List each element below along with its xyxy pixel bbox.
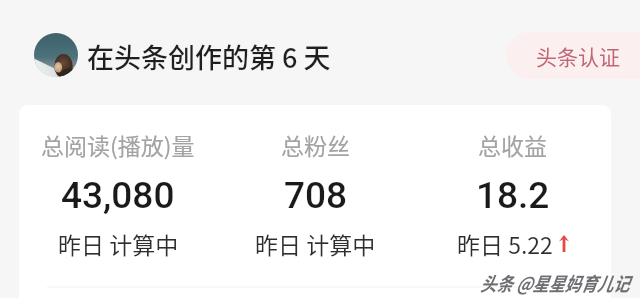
button[interactable]: Profile avatar	[34, 33, 78, 77]
staticText: 昨日 5.22	[457, 227, 553, 260]
staticText: 708	[284, 174, 348, 217]
button[interactable]: 总阅读(播放)量	[19, 105, 217, 260]
staticText: 总阅读(播放)量	[41, 128, 195, 161]
staticText: 总粉丝	[281, 128, 350, 161]
staticText: 头条 @星星妈育儿记	[480, 269, 630, 297]
staticText: 43,080	[61, 174, 175, 217]
button[interactable]: 总收益	[414, 105, 611, 260]
staticText: 昨日 计算中	[58, 227, 179, 260]
staticText: 昨日 计算中	[255, 227, 376, 260]
staticText: 18.2	[476, 174, 550, 217]
button[interactable]: 总粉丝	[217, 105, 414, 260]
button[interactable]: 头条认证	[506, 32, 640, 79]
staticText: 头条认证	[536, 41, 620, 71]
staticText: 总收益	[478, 128, 547, 161]
staticText: 在头条创作的第 6 天	[87, 37, 331, 76]
